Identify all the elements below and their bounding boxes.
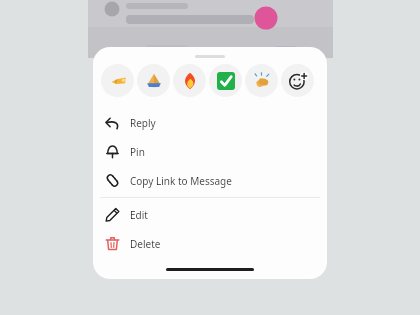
button[interactable]: check (209, 64, 242, 97)
button[interactable]: Pin (93, 137, 327, 166)
staticText: Copy Link to Message (130, 174, 232, 188)
button[interactable]: pinch (101, 64, 134, 97)
button[interactable]: Copy Link to Message (93, 166, 327, 195)
staticText: Edit (130, 208, 148, 222)
button[interactable]: Add reaction (281, 64, 314, 97)
staticText: Delete (130, 237, 161, 251)
staticText: Reply (130, 116, 156, 130)
button[interactable]: fire (173, 64, 206, 97)
button[interactable]: Edit (93, 200, 327, 229)
button[interactable]: Reply (93, 108, 327, 137)
button[interactable]: pray (137, 64, 170, 97)
button[interactable]: Delete (93, 229, 327, 258)
button[interactable]: clap (245, 64, 278, 97)
staticText: Pin (130, 145, 145, 159)
